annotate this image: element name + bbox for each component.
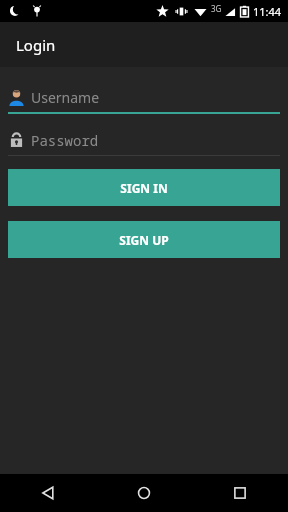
staticText: SIGN IN [120, 180, 168, 196]
button[interactable]: SIGN IN [8, 169, 280, 206]
staticText: Username [31, 88, 100, 107]
button[interactable]: Home [96, 474, 192, 512]
staticText: SIGN UP [119, 232, 169, 248]
button[interactable]: Username [8, 88, 280, 114]
staticText: Login [16, 35, 56, 55]
button[interactable]: Password [8, 131, 280, 156]
staticText: 11:44 [253, 4, 282, 19]
button[interactable]: Recent apps [192, 474, 288, 512]
button[interactable]: SIGN UP [8, 221, 280, 258]
button[interactable]: Back [0, 474, 96, 512]
staticText: Password [31, 131, 99, 150]
staticText: 3G [211, 3, 222, 14]
